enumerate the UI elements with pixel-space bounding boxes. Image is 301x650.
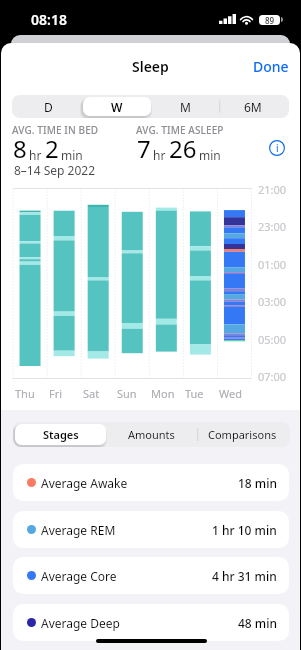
- button[interactable]: W: [83, 97, 151, 116]
- staticText: 21:00: [258, 182, 287, 197]
- staticText: 26: [169, 132, 197, 165]
- button[interactable]: Amounts: [106, 424, 197, 445]
- staticText: 03:00: [258, 294, 287, 309]
- staticText: 48 min: [238, 615, 277, 631]
- staticText: Fri: [49, 386, 63, 401]
- staticText: Comparisons: [208, 427, 277, 442]
- staticText: 23:00: [258, 219, 287, 234]
- button[interactable]: More info: [267, 138, 287, 158]
- staticText: 6M: [244, 99, 262, 115]
- staticText: Sleep: [132, 57, 169, 76]
- button[interactable]: Average Awake: [13, 464, 289, 501]
- staticText: 2: [45, 132, 59, 165]
- staticText: 8–14 Sep 2022: [14, 162, 96, 178]
- staticText: 08:18: [31, 10, 67, 29]
- staticText: 1 hr 10 min: [212, 522, 277, 538]
- staticText: i: [276, 141, 279, 155]
- staticText: Tue: [185, 386, 204, 401]
- staticText: Average REM: [41, 522, 116, 538]
- staticText: AVG. TIME IN BED: [12, 123, 99, 137]
- staticText: Average Awake: [41, 475, 128, 491]
- staticText: Sun: [117, 386, 137, 401]
- button[interactable]: Stages: [15, 424, 106, 445]
- staticText: Mon: [151, 386, 175, 401]
- staticText: Average Core: [41, 568, 117, 584]
- staticText: 8: [13, 132, 27, 165]
- button[interactable]: Average Deep: [13, 604, 289, 641]
- staticText: 4 hr 31 min: [212, 568, 277, 584]
- button[interactable]: D: [14, 97, 83, 116]
- staticText: Sat: [83, 386, 100, 401]
- staticText: 7: [137, 132, 151, 165]
- staticText: Thu: [15, 386, 35, 401]
- staticText: AVG. TIME ASLEEP: [136, 123, 224, 137]
- staticText: 18 min: [238, 475, 277, 491]
- staticText: Amounts: [128, 427, 175, 442]
- button[interactable]: Done: [242, 49, 300, 84]
- staticText: 05:00: [258, 332, 287, 347]
- staticText: Done: [253, 57, 289, 76]
- staticText: W: [111, 99, 123, 115]
- staticText: min: [61, 147, 83, 163]
- staticText: 89: [265, 15, 275, 25]
- staticText: M: [180, 99, 191, 115]
- staticText: hr: [29, 147, 42, 163]
- staticText: hr: [153, 147, 166, 163]
- button[interactable]: Average REM: [13, 511, 289, 548]
- staticText: Average Deep: [41, 615, 120, 631]
- button[interactable]: 6M: [219, 97, 287, 116]
- staticText: 01:00: [258, 257, 287, 272]
- staticText: Stages: [43, 427, 79, 442]
- staticText: D: [44, 99, 53, 115]
- staticText: Wed: [219, 386, 242, 401]
- staticText: min: [199, 147, 221, 163]
- button[interactable]: M: [151, 97, 219, 116]
- button[interactable]: Average Core: [13, 557, 289, 594]
- button[interactable]: Comparisons: [197, 424, 288, 445]
- staticText: 07:00: [258, 369, 287, 384]
